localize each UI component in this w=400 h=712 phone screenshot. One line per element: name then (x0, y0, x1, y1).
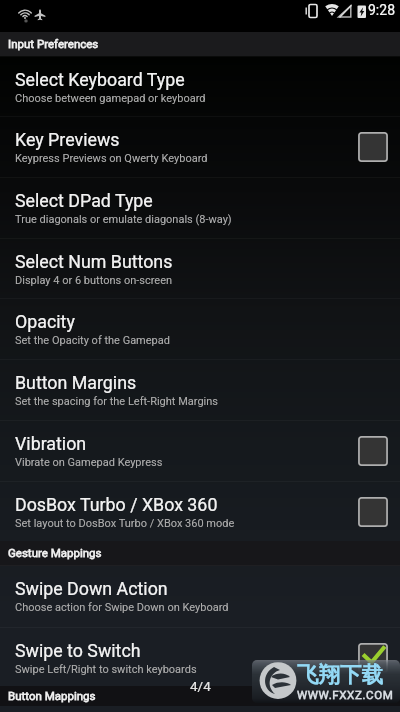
staticText: Keypress Previews on Qwerty Keyboard (15, 152, 208, 165)
staticText: Key Previews (15, 129, 120, 150)
button[interactable]: Swipe to Switch (0, 627, 400, 687)
button[interactable]: Opacity (0, 298, 400, 358)
staticText: Select Num Buttons (15, 251, 173, 272)
button[interactable]: Button Mappings (0, 686, 400, 706)
staticText: Opacity (15, 311, 75, 332)
staticText: 9:28 (368, 2, 395, 18)
staticText: Button Margins (15, 372, 137, 393)
staticText: Display 4 or 6 buttons on-screen (15, 274, 173, 287)
staticText: Input Preferences (8, 37, 99, 50)
staticText: Choose between gamepad or keyboard (15, 92, 206, 105)
staticText: DosBox Turbo / XBox 360 (15, 494, 218, 515)
staticText: Vibrate on Gamepad Keypress (15, 456, 163, 469)
staticText: Swipe to Switch (15, 640, 141, 661)
button[interactable]: Key Previews (0, 116, 400, 176)
staticText: Select Keyboard Type (15, 69, 185, 90)
button[interactable]: Button Margins (0, 359, 400, 419)
staticText: Vibration (15, 433, 87, 454)
staticText: 4/4 (190, 678, 211, 694)
button[interactable]: Vibration (358, 436, 388, 466)
button[interactable]: DosBox Turbo / XBox 360 (0, 481, 400, 541)
staticText: Gesture Mappings (8, 546, 102, 559)
staticText: Set the Opacity of the Gamepad (15, 334, 170, 347)
staticText: Choose action for Swipe Down on Keyboard (15, 601, 229, 614)
button[interactable]: Select Keyboard Type (0, 56, 400, 116)
staticText: Set layout to DosBox Turbo / XBox 360 mo… (15, 517, 235, 530)
staticText: WWW.FXXZ.COM (297, 688, 394, 701)
button[interactable]: Key Previews (358, 132, 388, 162)
button[interactable]: Swipe Down Action (0, 565, 400, 625)
button[interactable]: Gesture Mappings (0, 541, 400, 566)
staticText: Button Mappings (8, 689, 96, 702)
staticText: Swipe Left/Right to switch keyboards (15, 663, 197, 676)
staticText: Set the spacing for the Left-Right Margi… (15, 395, 218, 408)
staticText: True diagonals or emulate diagonals (8-w… (15, 213, 232, 226)
staticText: 飞翔下载 (297, 661, 383, 688)
button[interactable]: Input Preferences (0, 32, 400, 56)
other: Watermark (252, 660, 400, 703)
button[interactable]: Select DPad Type (0, 177, 400, 237)
button[interactable]: Swipe to Switch (358, 643, 388, 673)
button[interactable]: DosBox Turbo / XBox 360 (358, 497, 388, 527)
staticText: Swipe Down Action (15, 578, 168, 599)
button[interactable]: Vibration (0, 420, 400, 480)
staticText: Select DPad Type (15, 190, 153, 211)
button[interactable]: Select Num Buttons (0, 238, 400, 298)
